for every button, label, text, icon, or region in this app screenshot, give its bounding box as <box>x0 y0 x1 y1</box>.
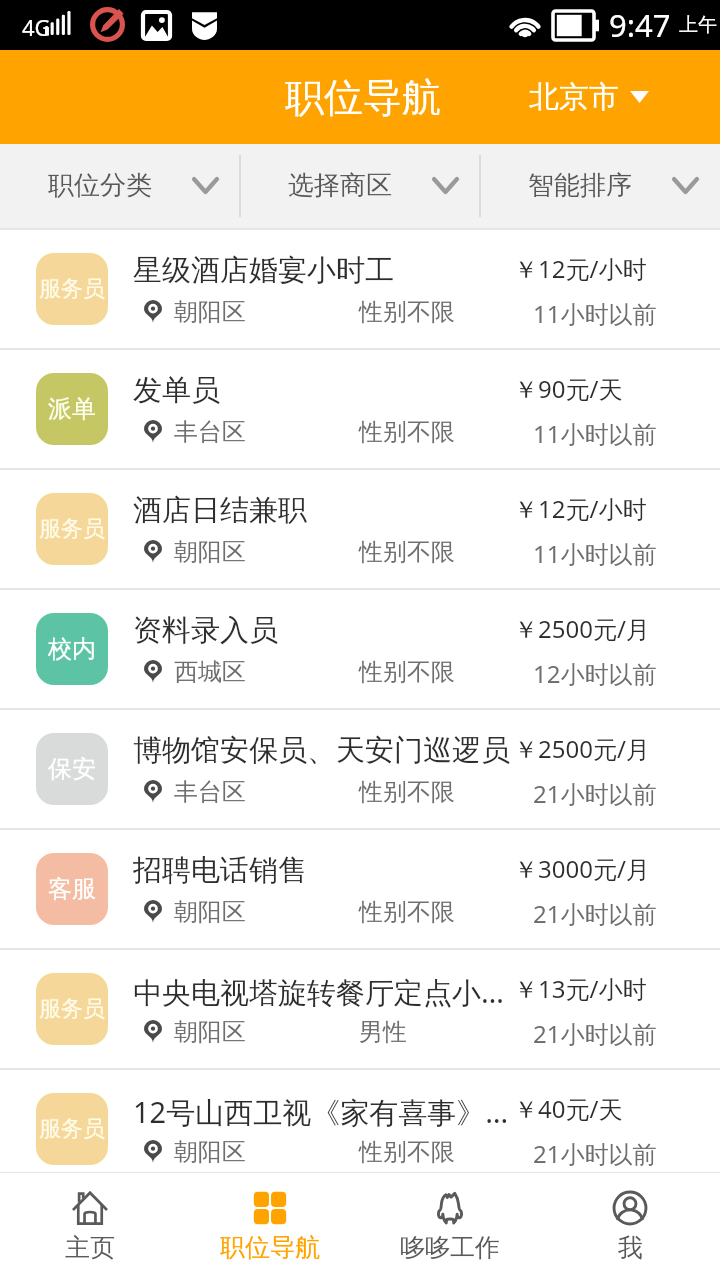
staticText: 性别不限 <box>359 297 455 327</box>
staticText: ￥2500元/月 <box>514 612 650 645</box>
staticText: 服务员 <box>39 995 105 1023</box>
button[interactable]: 职位分类 <box>0 144 240 230</box>
button[interactable]: 主页 <box>0 1173 180 1280</box>
button[interactable]: 职位导航 <box>180 1173 360 1280</box>
staticText: 北京市 <box>529 78 619 116</box>
staticText: 9:47 <box>609 4 671 46</box>
button[interactable]: 保安 <box>0 710 720 830</box>
staticText: 丰台区 <box>174 417 246 447</box>
staticText: 性别不限 <box>359 777 455 807</box>
staticText: ￥2500元/月 <box>514 732 650 765</box>
button[interactable]: 智能排序 <box>480 144 720 230</box>
staticText: 哆哆工作 <box>400 1232 500 1263</box>
staticText: 21小时以前 <box>533 777 657 810</box>
button[interactable]: 客服 <box>0 830 720 950</box>
button[interactable]: 服务员 <box>0 1070 720 1172</box>
button[interactable]: 哆哆工作 <box>360 1173 540 1280</box>
staticText: 保安 <box>48 754 96 784</box>
staticText: 朝阳区 <box>174 897 246 927</box>
staticText: 性别不限 <box>359 1137 455 1167</box>
staticText: 客服 <box>48 874 96 904</box>
staticText: ￥40元/天 <box>514 1092 623 1125</box>
staticText: 朝阳区 <box>174 1137 246 1167</box>
staticText: 男性 <box>359 1017 407 1047</box>
staticText: 上午 <box>679 13 717 37</box>
staticText: 11小时以前 <box>533 417 657 450</box>
staticText: 11小时以前 <box>533 297 657 330</box>
staticText: 智能排序 <box>528 169 632 202</box>
staticText: 21小时以前 <box>533 897 657 930</box>
button[interactable]: 服务员 <box>0 470 720 590</box>
staticText: ￥13元/小时 <box>514 972 647 1005</box>
staticText: 21小时以前 <box>533 1017 657 1050</box>
staticText: 职位导航 <box>285 73 441 122</box>
staticText: 性别不限 <box>359 897 455 927</box>
staticText: 朝阳区 <box>174 537 246 567</box>
staticText: 21小时以前 <box>533 1137 657 1170</box>
staticText: 西城区 <box>174 657 246 687</box>
staticText: 朝阳区 <box>174 297 246 327</box>
staticText: 12号山西卫视《家有喜事》… <box>133 1092 510 1132</box>
staticText: 性别不限 <box>359 657 455 687</box>
staticText: 资料录入员 <box>133 612 510 649</box>
staticText: 选择商区 <box>288 169 392 202</box>
button[interactable]: 服务员 <box>0 230 720 350</box>
button[interactable]: 选择城市 北京市 <box>529 78 649 116</box>
button[interactable]: 派单 <box>0 350 720 470</box>
staticText: 丰台区 <box>174 777 246 807</box>
staticText: 服务员 <box>39 275 105 303</box>
staticText: 中央电视塔旋转餐厅定点小… <box>133 972 510 1012</box>
staticText: 博物馆安保员、天安门巡逻员 <box>133 732 510 769</box>
staticText: 性别不限 <box>359 417 455 447</box>
staticText: 11小时以前 <box>533 537 657 570</box>
staticText: ￥12元/小时 <box>514 492 647 525</box>
staticText: 性别不限 <box>359 537 455 567</box>
staticText: 职位导航 <box>220 1232 320 1263</box>
staticText: 12小时以前 <box>533 657 657 690</box>
button[interactable]: 选择商区 <box>240 144 480 230</box>
staticText: 校内 <box>48 634 96 664</box>
staticText: 主页 <box>65 1232 115 1263</box>
staticText: ￥12元/小时 <box>514 252 647 285</box>
staticText: 酒店日结兼职 <box>133 492 510 529</box>
button[interactable]: 我 <box>540 1173 720 1280</box>
staticText: 4G <box>22 12 51 42</box>
staticText: 朝阳区 <box>174 1017 246 1047</box>
staticText: 星级酒店婚宴小时工 <box>133 252 510 289</box>
button[interactable]: 服务员 <box>0 950 720 1070</box>
staticText: ￥3000元/月 <box>514 852 650 885</box>
staticText: 招聘电话销售 <box>133 852 510 889</box>
staticText: 我 <box>618 1232 643 1263</box>
staticText: 职位分类 <box>48 169 152 202</box>
staticText: 服务员 <box>39 1115 105 1143</box>
staticText: ￥90元/天 <box>514 372 623 405</box>
button[interactable]: 校内 <box>0 590 720 710</box>
staticText: 服务员 <box>39 515 105 543</box>
staticText: 发单员 <box>133 372 510 409</box>
staticText: 派单 <box>48 394 96 424</box>
